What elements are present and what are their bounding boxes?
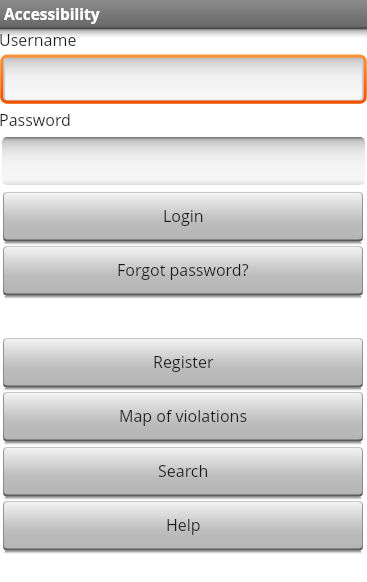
button[interactable]: Help (3, 501, 363, 554)
staticText: Register (153, 351, 214, 373)
button[interactable]: Map of violations (3, 392, 363, 445)
button[interactable]: Login (3, 192, 363, 245)
button[interactable] (0, 135, 367, 187)
staticText: Forgot password? (117, 259, 249, 281)
button[interactable]: Register (3, 338, 363, 391)
staticText: Username (0, 29, 77, 51)
button[interactable] (0, 53, 367, 105)
staticText: Accessibility (4, 3, 100, 24)
staticText: Map of violations (119, 405, 248, 427)
staticText: Help (166, 514, 201, 536)
staticText: Password (0, 109, 71, 131)
staticText: Login (163, 205, 204, 227)
staticText: Search (158, 460, 209, 482)
button[interactable]: Forgot password? (3, 246, 363, 299)
button[interactable]: Search (3, 447, 363, 500)
